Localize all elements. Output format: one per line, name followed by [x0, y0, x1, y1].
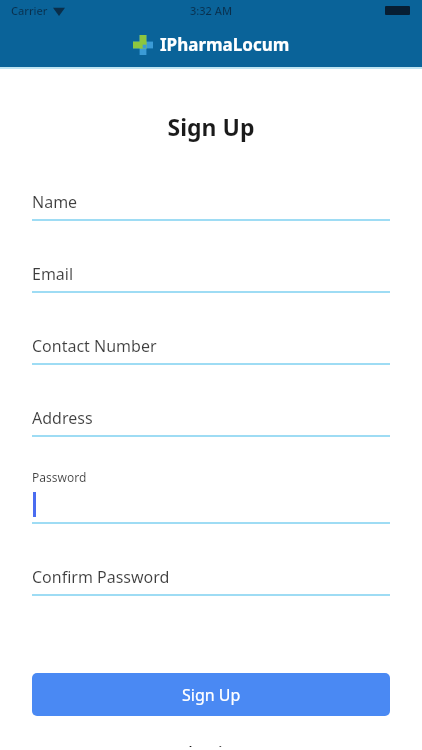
- staticText: Contact Number: [32, 335, 157, 357]
- button[interactable]: Sign Up: [32, 673, 390, 716]
- staticText: Sign Up: [182, 684, 241, 706]
- button[interactable]: Email: [0, 253, 422, 325]
- button[interactable]: Address: [0, 397, 422, 469]
- staticText: Address: [32, 407, 93, 429]
- button[interactable]: Name: [0, 181, 422, 253]
- staticText: Name: [32, 191, 78, 213]
- staticText: IPharmaLocum: [160, 33, 290, 56]
- button[interactable]: Contact Number: [0, 325, 422, 397]
- button[interactable]: Confirm Password: [0, 556, 422, 628]
- staticText: Password: [32, 469, 87, 485]
- button[interactable]: Login: [178, 737, 244, 750]
- button[interactable]: Password: [0, 469, 422, 556]
- staticText: Sign Up: [0, 111, 422, 142]
- staticText: 3:32 AM: [190, 3, 233, 18]
- staticText: Email: [32, 263, 74, 285]
- staticText: Login: [188, 740, 234, 747]
- staticText: Carrier: [11, 3, 48, 18]
- staticText: Confirm Password: [32, 566, 170, 588]
